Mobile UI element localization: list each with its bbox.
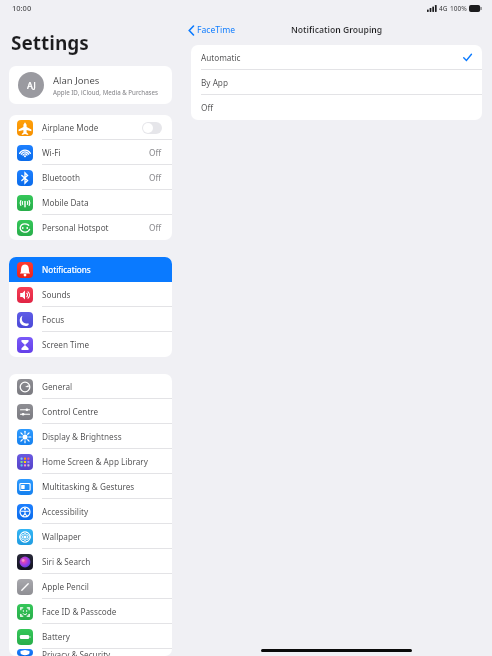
staticText: Alan Jones xyxy=(53,74,100,87)
button[interactable]: Personal Hotspot xyxy=(9,215,172,240)
button[interactable]: General xyxy=(9,374,172,399)
staticText: Privacy & Security xyxy=(42,649,162,656)
button[interactable]: Wallpaper xyxy=(9,524,172,549)
staticText: Mobile Data xyxy=(42,197,162,208)
staticText: Accessibility xyxy=(42,506,162,517)
button[interactable]: Off xyxy=(191,95,482,120)
staticText: Wallpaper xyxy=(42,531,162,542)
button[interactable]: Automatic xyxy=(191,45,482,70)
staticText: Siri & Search xyxy=(42,556,162,567)
staticText: AJ xyxy=(27,79,36,91)
staticText: Off xyxy=(149,222,162,233)
staticText: Airplane Mode xyxy=(42,122,142,133)
staticText: Off xyxy=(149,147,162,158)
staticText: Notifications xyxy=(42,264,162,275)
button[interactable]: Wi-Fi xyxy=(9,140,172,165)
staticText: By App xyxy=(201,77,472,88)
staticText: Home Screen & App Library xyxy=(42,456,162,467)
button[interactable]: AJ xyxy=(9,66,172,104)
button[interactable]: By App xyxy=(191,70,482,95)
button[interactable]: Sounds xyxy=(9,282,172,307)
staticText: Notification Grouping xyxy=(291,24,383,36)
button[interactable]: Privacy & Security xyxy=(9,649,172,656)
button[interactable]: Mobile Data xyxy=(9,190,172,215)
staticText: Personal Hotspot xyxy=(42,222,149,233)
staticText: General xyxy=(42,381,162,392)
button[interactable]: Battery xyxy=(9,624,172,649)
button[interactable]: Screen Time xyxy=(9,332,172,357)
staticText: Apple ID, iCloud, Media & Purchases xyxy=(53,88,159,96)
button[interactable]: Home Screen & App Library xyxy=(9,449,172,474)
staticText: Face ID & Passcode xyxy=(42,606,162,617)
staticText: 100% xyxy=(450,4,467,13)
staticText: Off xyxy=(201,102,472,113)
staticText: Display & Brightness xyxy=(42,431,162,442)
staticText: Battery xyxy=(42,631,162,642)
staticText: Multitasking & Gestures xyxy=(42,481,162,492)
staticText: Screen Time xyxy=(42,339,162,350)
staticText: Sounds xyxy=(42,289,162,300)
staticText: Automatic xyxy=(201,52,463,63)
staticText: Control Centre xyxy=(42,406,162,417)
staticText: Wi-Fi xyxy=(42,147,149,158)
staticText: Apple Pencil xyxy=(42,581,162,592)
button[interactable]: Face ID & Passcode xyxy=(9,599,172,624)
staticText: Settings xyxy=(11,30,89,56)
staticText: Bluetooth xyxy=(42,172,149,183)
button[interactable]: Apple Pencil xyxy=(9,574,172,599)
button[interactable]: Notifications xyxy=(9,257,172,282)
button[interactable]: FaceTime xyxy=(181,21,242,39)
staticText: 4G xyxy=(439,4,448,13)
staticText: 10:00 xyxy=(12,3,32,13)
button[interactable]: Multitasking & Gestures xyxy=(9,474,172,499)
staticText: Focus xyxy=(42,314,162,325)
button[interactable]: Accessibility xyxy=(9,499,172,524)
button[interactable]: Airplane Mode xyxy=(9,115,172,140)
staticText: Off xyxy=(149,172,162,183)
button[interactable]: Control Centre xyxy=(9,399,172,424)
button[interactable]: Display & Brightness xyxy=(9,424,172,449)
button[interactable]: Focus xyxy=(9,307,172,332)
button[interactable]: Bluetooth xyxy=(9,165,172,190)
staticText: FaceTime xyxy=(197,24,236,36)
button[interactable]: Siri & Search xyxy=(9,549,172,574)
